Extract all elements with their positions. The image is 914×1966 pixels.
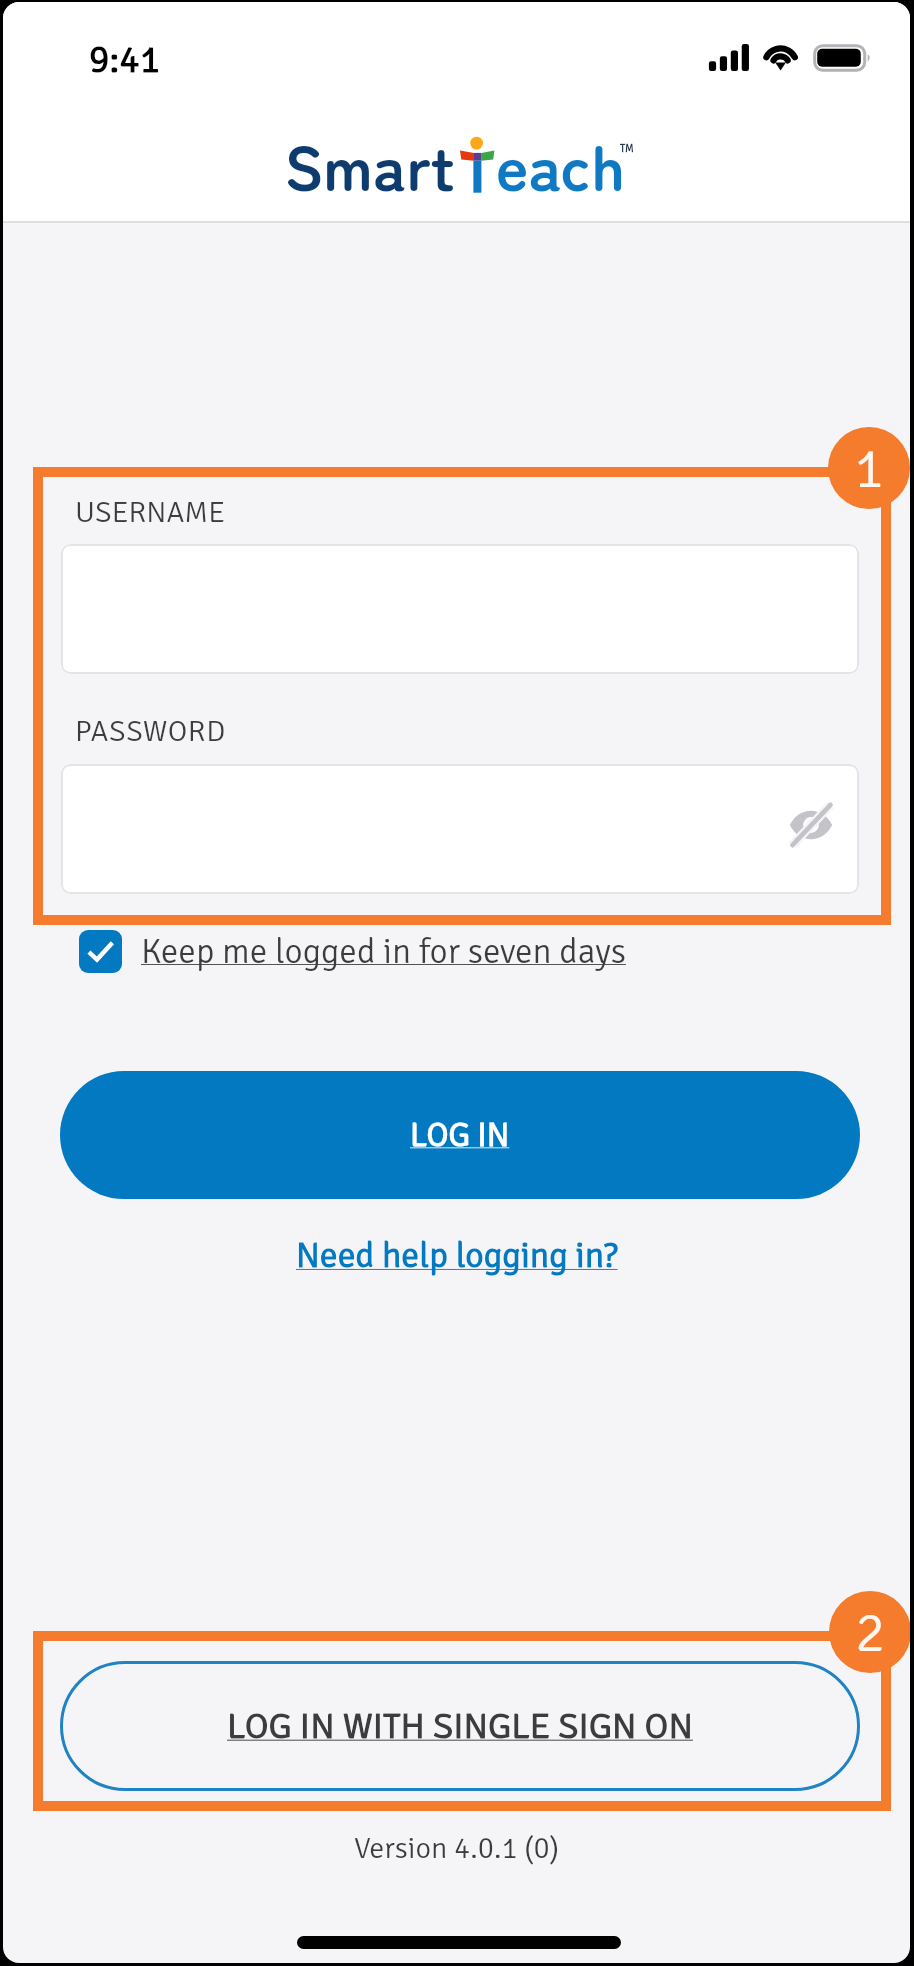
staticText: USERNAME [75,494,226,531]
staticText: 2 [855,1598,886,1667]
button[interactable]: LOG IN WITH SINGLE SIGN ON [60,1661,860,1791]
staticText: Keep me logged in for seven days [141,930,626,973]
staticText: Version 4.0.1 (0) [354,1830,559,1867]
button[interactable]: Show password [774,788,848,862]
staticText: Smart [284,118,455,209]
staticText: PASSWORD [75,713,226,750]
button[interactable]: Keep me logged in for seven days [79,923,626,979]
staticText: 1 [854,434,885,503]
staticText: TM [620,142,634,156]
staticText: each [496,118,625,209]
button[interactable]: Need help logging in? [3,1229,910,1283]
button[interactable]: LOG IN [60,1071,860,1199]
staticText: LOG IN [410,1114,510,1156]
staticText: Need help logging in? [296,1234,618,1278]
staticText: 9:41 [89,36,161,83]
staticText: LOG IN WITH SINGLE SIGN ON [227,1704,693,1749]
